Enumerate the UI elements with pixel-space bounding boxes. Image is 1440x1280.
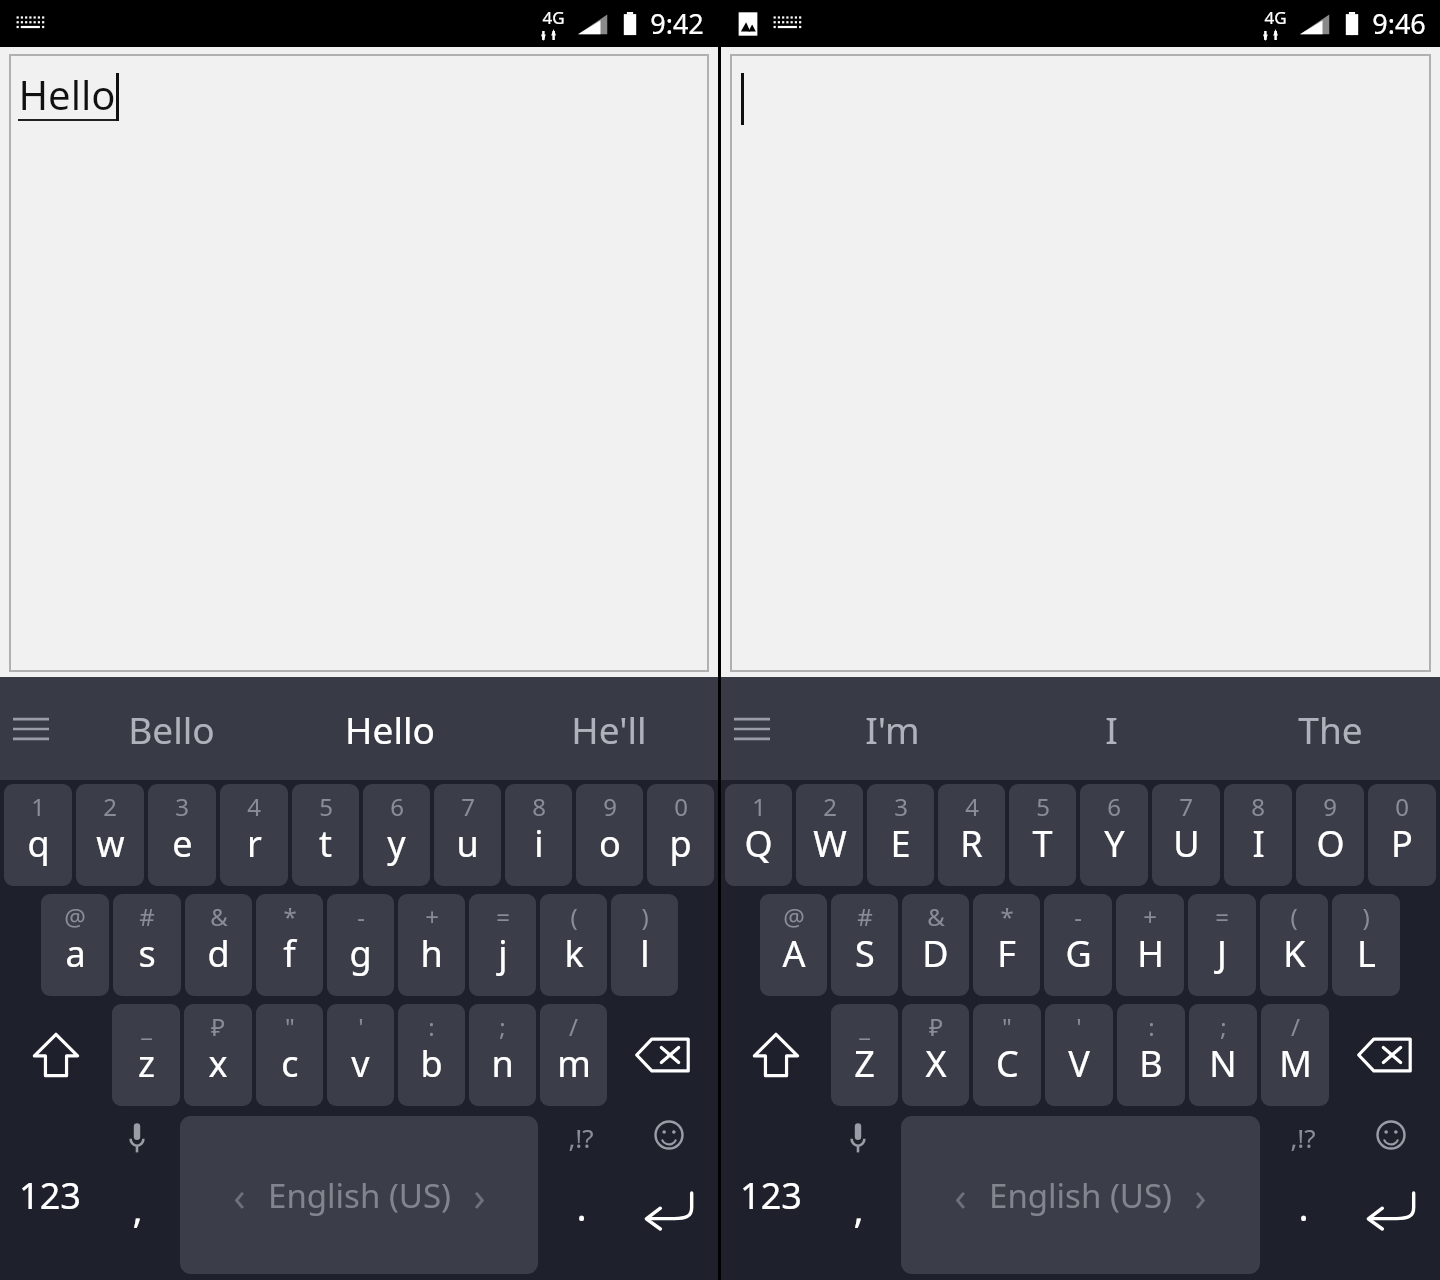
button[interactable]: ,!?	[541, 1114, 621, 1276]
button[interactable]: /	[540, 1004, 607, 1106]
button[interactable]: Hello	[10, 55, 708, 671]
staticText: S	[855, 929, 875, 978]
staticText: H	[1137, 929, 1164, 978]
button[interactable]: ‹	[901, 1116, 1260, 1274]
button[interactable]: 8	[505, 784, 572, 886]
button[interactable]: 9	[1296, 784, 1364, 886]
staticText: 123	[740, 1171, 802, 1220]
button[interactable]: )	[611, 894, 678, 996]
staticText: B	[1139, 1039, 1163, 1088]
button[interactable]: #	[113, 894, 181, 996]
button[interactable]: Shift	[723, 1004, 829, 1106]
staticText: +	[1143, 900, 1157, 933]
staticText: ;	[499, 1010, 506, 1043]
button[interactable]: 1	[4, 784, 72, 886]
button[interactable]: 9	[576, 784, 643, 886]
staticText: /	[1291, 1010, 1300, 1043]
button[interactable]: Menu	[721, 677, 783, 780]
button[interactable]: /	[1261, 1004, 1329, 1106]
button[interactable]: @	[41, 894, 109, 996]
staticText: 3	[175, 790, 189, 823]
button[interactable]: Backspace	[609, 1004, 716, 1106]
button[interactable]: -	[1044, 894, 1112, 996]
button[interactable]: "	[256, 1004, 323, 1106]
button[interactable]: He'll	[499, 677, 718, 780]
staticText: 7	[461, 790, 475, 823]
button[interactable]: ,	[97, 1114, 177, 1276]
button[interactable]: ₽	[902, 1004, 969, 1106]
button[interactable]: 7	[434, 784, 501, 886]
staticText: 4	[965, 790, 979, 823]
staticText: u	[456, 819, 479, 868]
button[interactable]: 3	[148, 784, 216, 886]
button[interactable]: 7	[1152, 784, 1220, 886]
button[interactable]: Shift	[2, 1004, 110, 1106]
staticText: '	[1076, 1010, 1082, 1043]
staticText: 5	[1036, 790, 1050, 823]
button[interactable]: ₽	[184, 1004, 252, 1106]
button[interactable]: Hello	[280, 677, 499, 780]
button[interactable]: _	[831, 1004, 898, 1106]
staticText: v	[351, 1039, 370, 1088]
button[interactable]: Enter	[1343, 1114, 1438, 1276]
button[interactable]: Bello	[62, 677, 280, 780]
button[interactable]: Menu	[0, 677, 62, 780]
button[interactable]: ;	[1189, 1004, 1257, 1106]
button[interactable]: 4	[220, 784, 288, 886]
button[interactable]: 0	[1368, 784, 1436, 886]
button[interactable]: ‹	[180, 1116, 538, 1274]
button[interactable]: *	[256, 894, 323, 996]
button[interactable]: 123	[2, 1114, 97, 1276]
button[interactable]: 1	[725, 784, 792, 886]
button[interactable]: 123	[723, 1114, 818, 1276]
staticText: X	[925, 1039, 947, 1088]
button[interactable]: *	[973, 894, 1040, 996]
button[interactable]: 2	[796, 784, 863, 886]
button[interactable]: -	[327, 894, 394, 996]
button[interactable]: '	[1045, 1004, 1113, 1106]
button[interactable]: &	[185, 894, 252, 996]
button[interactable]: Backspace	[1331, 1004, 1438, 1106]
button[interactable]: '	[327, 1004, 394, 1106]
button[interactable]: ,!?	[1263, 1114, 1343, 1276]
button[interactable]: 4	[938, 784, 1005, 886]
staticText: i	[534, 819, 544, 868]
staticText: ,!?	[1290, 1120, 1316, 1155]
button[interactable]: =	[1188, 894, 1256, 996]
button[interactable]: :	[1117, 1004, 1185, 1106]
button[interactable]: 2	[76, 784, 144, 886]
button[interactable]: )	[1332, 894, 1400, 996]
staticText: l	[640, 929, 650, 978]
button[interactable]: #	[831, 894, 898, 996]
button[interactable]: +	[1116, 894, 1184, 996]
button[interactable]: :	[398, 1004, 465, 1106]
button[interactable]: "	[973, 1004, 1041, 1106]
button[interactable]: &	[902, 894, 969, 996]
button[interactable]: I'm	[783, 677, 1002, 780]
button[interactable]: I	[1002, 677, 1221, 780]
staticText: r	[247, 819, 262, 868]
button[interactable]: The	[1221, 677, 1440, 780]
staticText: The	[1298, 704, 1363, 754]
button[interactable]: 5	[292, 784, 359, 886]
staticText: P	[1391, 819, 1413, 868]
button[interactable]: =	[469, 894, 536, 996]
button[interactable]: 3	[867, 784, 934, 886]
button[interactable]: 8	[1224, 784, 1292, 886]
button[interactable]: Enter	[621, 1114, 716, 1276]
button[interactable]: @	[760, 894, 827, 996]
button[interactable]: ,	[818, 1114, 898, 1276]
button[interactable]: 0	[647, 784, 714, 886]
staticText: -	[357, 900, 365, 933]
staticText: I	[1252, 819, 1265, 868]
button[interactable]: 6	[1080, 784, 1148, 886]
button[interactable]: 6	[363, 784, 430, 886]
button[interactable]: (	[1260, 894, 1328, 996]
button[interactable]: (	[540, 894, 607, 996]
button[interactable]: ;	[469, 1004, 536, 1106]
button[interactable]: _	[112, 1004, 180, 1106]
staticText: f	[283, 929, 296, 978]
button[interactable]: 5	[1009, 784, 1076, 886]
button[interactable]: +	[398, 894, 465, 996]
button[interactable]	[731, 55, 1430, 671]
